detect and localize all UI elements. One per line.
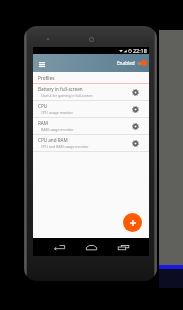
staticText: RAM usage monitor [41, 127, 74, 132]
staticText: Profiles [38, 75, 55, 81]
button[interactable]: Home [82, 238, 100, 256]
button[interactable]: Profile settings [131, 84, 140, 100]
button[interactable]: Enabled [117, 60, 147, 66]
staticText: 22:18 [133, 47, 147, 54]
staticText: CPU and RAM usage monitor [41, 144, 89, 149]
button[interactable]: CPU [33, 101, 149, 118]
button[interactable]: Recent apps [114, 238, 132, 256]
staticText: RAM [38, 120, 48, 126]
button[interactable]: Profile settings [131, 118, 140, 134]
staticText: CPU [38, 103, 48, 109]
button[interactable]: Profile settings [131, 101, 140, 117]
staticText: CPU usage monitor [41, 110, 73, 115]
button[interactable]: RAM [33, 118, 149, 135]
button[interactable]: Back [50, 238, 68, 256]
staticText: Enabled [117, 60, 135, 66]
button[interactable]: Add profile [123, 213, 142, 232]
button[interactable]: Profile settings [131, 135, 140, 151]
button[interactable]: CPU and RAM [33, 135, 149, 152]
staticText: Useful for gaming in full-screen [41, 93, 93, 98]
button[interactable]: Open navigation drawer [33, 54, 50, 72]
staticText: CPU and RAM [38, 137, 68, 143]
staticText: Battery in full-screen [38, 86, 83, 92]
button[interactable]: Battery in full-screen [33, 84, 149, 101]
